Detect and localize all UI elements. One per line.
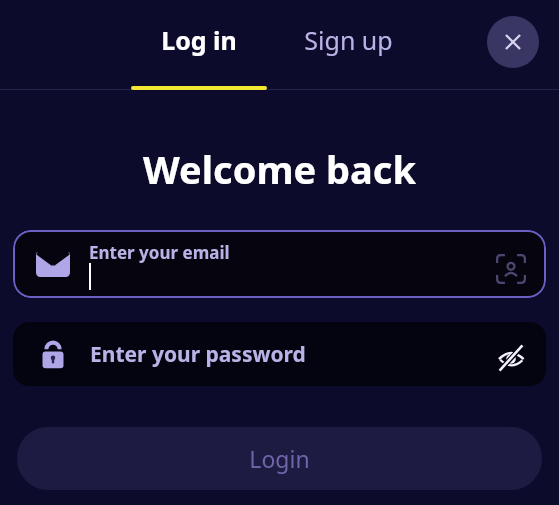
staticText: Log in bbox=[161, 23, 237, 57]
button[interactable]: Enter your password bbox=[13, 322, 546, 386]
staticText: Enter your email bbox=[89, 241, 230, 264]
button[interactable]: Face ID bbox=[491, 249, 531, 289]
button[interactable]: Close bbox=[487, 16, 539, 68]
staticText: Enter your password bbox=[90, 340, 306, 369]
staticText: Sign up bbox=[304, 23, 393, 57]
button[interactable]: Login bbox=[17, 427, 542, 490]
button[interactable]: Show password bbox=[491, 338, 531, 378]
staticText: Welcome back bbox=[143, 143, 416, 195]
staticText: Login bbox=[249, 443, 310, 474]
button[interactable]: Enter your email bbox=[13, 230, 546, 298]
button[interactable]: Log in bbox=[131, 0, 267, 91]
button[interactable]: Sign up bbox=[280, 0, 416, 91]
